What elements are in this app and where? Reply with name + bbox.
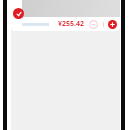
staticText: ¥255.42 [58, 19, 84, 29]
button[interactable]: Comments [89, 20, 98, 29]
button[interactable]: Add to cart [108, 20, 117, 29]
button[interactable]: More options [101, 20, 106, 29]
button[interactable]: ¥255.42 [11, 0, 120, 31]
button[interactable]: Selected [13, 8, 24, 19]
